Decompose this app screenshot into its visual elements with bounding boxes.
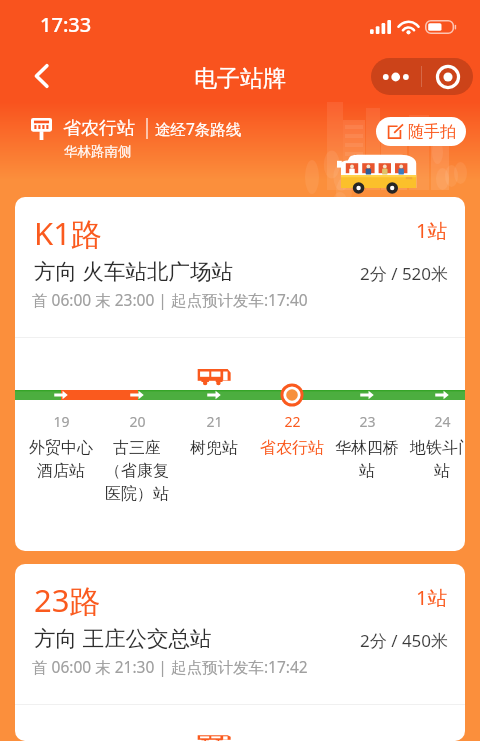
staticText: 随手拍 [408, 122, 456, 142]
staticText: 途经7条路线 [155, 118, 242, 139]
staticText: 23路 [34, 579, 101, 621]
staticText: 17:33 [40, 11, 92, 38]
staticText: 23 [359, 412, 376, 431]
staticText: 2分 / 450米 [360, 629, 449, 652]
staticText: 方向 火车站北广场站 [34, 256, 234, 285]
staticText: 电子站牌 [194, 64, 286, 93]
staticText: 省农行站 [260, 438, 324, 458]
staticText: 首 06:00 末 23:00 | 起点预计发车:17:40 [32, 289, 308, 310]
staticText: 古三座 （省康复 医院）站 [105, 438, 169, 504]
button[interactable]: More [371, 58, 421, 95]
staticText: 华林路南侧 [64, 143, 132, 160]
staticText: K1路 [34, 212, 102, 254]
button[interactable]: Back [20, 55, 62, 97]
button[interactable]: 随手拍 [376, 117, 466, 146]
button[interactable]: K1路 [15, 197, 465, 551]
staticText: 省农行站 [63, 117, 135, 140]
staticText: 20 [129, 412, 146, 431]
staticText: 24 [434, 412, 451, 431]
staticText: 22 [284, 412, 301, 431]
staticText: 19 [53, 412, 70, 431]
staticText: 21 [206, 412, 223, 431]
staticText: 地铁斗门 站 [410, 438, 465, 481]
staticText: 2分 / 520米 [360, 262, 449, 285]
staticText: 树兜站 [190, 438, 238, 458]
staticText: 方向 王庄公交总站 [34, 623, 212, 652]
staticText: 外贸中心 酒店站 [29, 438, 93, 481]
staticText: 首 06:00 末 21:30 | 起点预计发车:17:42 [32, 656, 308, 677]
button[interactable]: Close [422, 58, 473, 95]
staticText: 1站 [416, 217, 448, 244]
staticText: 华林四桥 站 [335, 438, 399, 481]
button[interactable]: 23路 [15, 564, 465, 741]
staticText: 1站 [416, 584, 448, 611]
